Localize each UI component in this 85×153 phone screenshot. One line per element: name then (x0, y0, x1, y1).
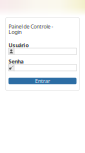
staticText: Painel de Controle - (8, 23, 53, 30)
staticText: Usuário (8, 42, 28, 49)
staticText: Entrar (35, 77, 50, 84)
staticText: Login (8, 28, 21, 36)
button[interactable]: Entrar (8, 78, 76, 84)
staticText: Senha (8, 58, 23, 65)
